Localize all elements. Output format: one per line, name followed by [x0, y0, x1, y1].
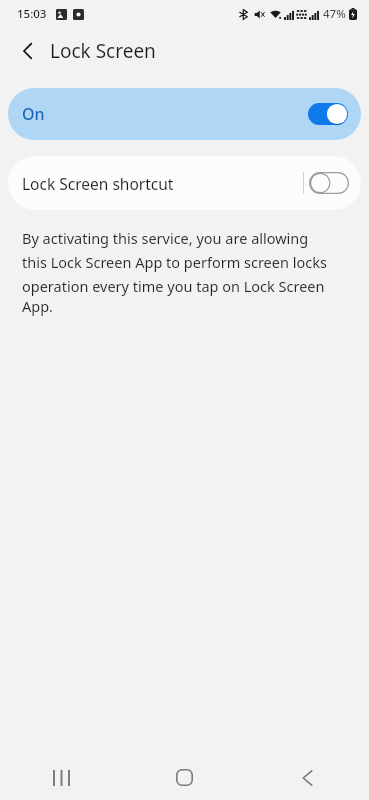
staticText: 47% [323, 6, 346, 22]
staticText: Lock Screen [50, 38, 156, 64]
button[interactable]: Back [246, 755, 369, 800]
button[interactable]: On [8, 88, 361, 140]
button[interactable]: Home [123, 755, 246, 800]
staticText: 15:03 [17, 6, 47, 22]
staticText: On [22, 103, 45, 125]
staticText: Lock Screen shortcut [22, 173, 174, 194]
button[interactable]: Recents [0, 755, 123, 800]
button[interactable]: Back [10, 33, 46, 69]
staticText: operation every time you tap on Lock Scr… [22, 276, 353, 316]
button[interactable]: Lock Screen shortcut [8, 156, 361, 210]
staticText: By activating this service, you are allo… [22, 228, 309, 248]
button[interactable]: Lock Screen shortcut toggle [309, 172, 349, 194]
staticText: this Lock Screen App to perform screen l… [22, 252, 327, 272]
